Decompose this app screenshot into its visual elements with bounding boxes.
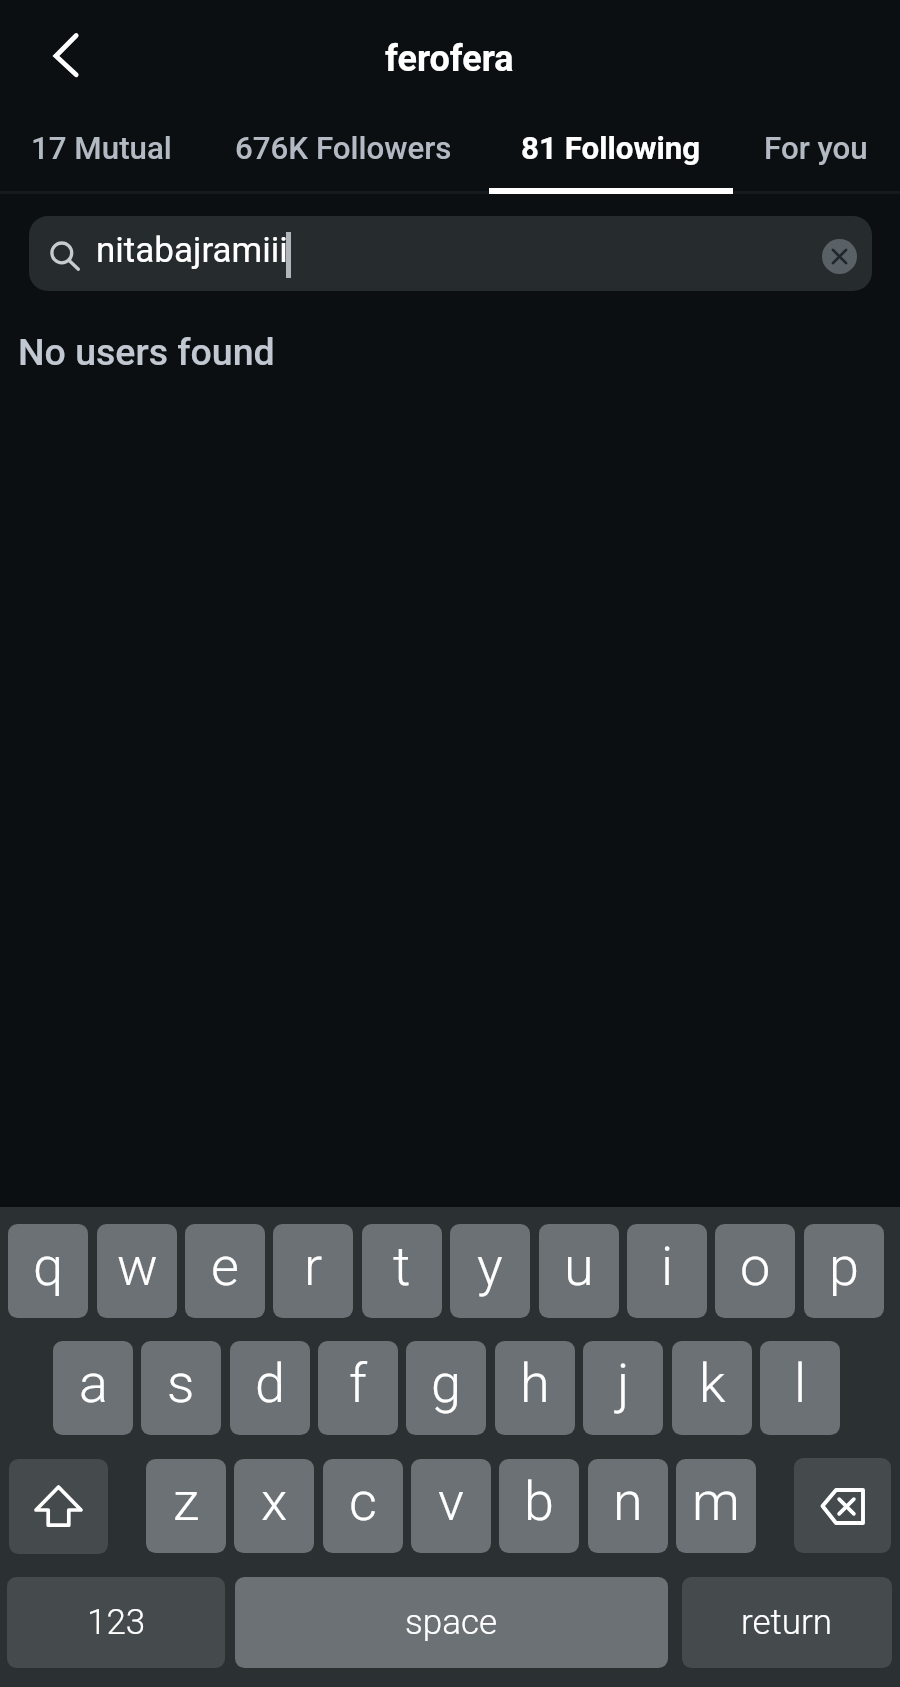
staticText: o (740, 1235, 771, 1298)
button[interactable]: d (230, 1341, 310, 1435)
button[interactable]: Backspace (794, 1458, 891, 1553)
button[interactable]: Back (26, 20, 98, 92)
button[interactable]: Clear text (822, 239, 857, 274)
staticText: z (173, 1470, 200, 1533)
staticText: g (431, 1352, 461, 1415)
staticText: 81 Following (521, 130, 701, 167)
button[interactable]: c (323, 1459, 403, 1553)
button[interactable]: f (318, 1341, 398, 1435)
button[interactable]: w (97, 1224, 177, 1318)
staticText: x (261, 1470, 288, 1533)
staticText: For you (764, 130, 868, 167)
button[interactable]: z (146, 1459, 226, 1553)
staticText: nitabajramiii (96, 230, 288, 271)
button[interactable]: 81 Following (491, 110, 731, 197)
staticText: j (617, 1352, 630, 1415)
staticText: h (520, 1352, 550, 1415)
staticText: l (794, 1352, 807, 1415)
staticText: k (699, 1352, 726, 1415)
button[interactable]: b (499, 1459, 579, 1553)
button[interactable]: l (760, 1341, 840, 1435)
staticText: 676K Followers (235, 130, 452, 167)
staticText: t (393, 1235, 411, 1298)
staticText: f (349, 1352, 367, 1415)
staticText: ferofera (385, 38, 514, 80)
staticText: 123 (87, 1602, 146, 1643)
button[interactable]: 123 (7, 1577, 225, 1668)
staticText: a (79, 1352, 108, 1415)
button[interactable]: p (804, 1224, 884, 1318)
button[interactable]: Search (29, 216, 872, 291)
staticText: return (741, 1602, 833, 1643)
staticText: r (304, 1235, 323, 1298)
staticText: p (829, 1235, 859, 1298)
button[interactable]: g (406, 1341, 486, 1435)
button[interactable]: u (539, 1224, 619, 1318)
button[interactable]: For you (731, 110, 900, 197)
button[interactable]: Shift (9, 1459, 108, 1554)
button[interactable]: i (627, 1224, 707, 1318)
button[interactable]: q (8, 1224, 88, 1318)
button[interactable]: h (495, 1341, 575, 1435)
staticText: space (405, 1602, 498, 1643)
staticText: v (438, 1470, 464, 1533)
button[interactable]: e (185, 1224, 265, 1318)
staticText: y (477, 1235, 503, 1298)
staticText: b (524, 1470, 554, 1533)
staticText: q (33, 1235, 64, 1298)
button[interactable]: v (411, 1459, 491, 1553)
button[interactable]: k (672, 1341, 752, 1435)
staticText: w (117, 1235, 158, 1298)
staticText: c (349, 1470, 377, 1533)
button[interactable]: n (588, 1459, 668, 1553)
button[interactable]: space (235, 1577, 668, 1668)
button[interactable]: r (273, 1224, 353, 1318)
button[interactable]: y (450, 1224, 530, 1318)
staticText: 17 Mutual (31, 130, 172, 167)
button[interactable]: return (682, 1577, 892, 1668)
staticText: i (661, 1235, 674, 1298)
staticText: u (564, 1235, 594, 1298)
button[interactable]: s (141, 1341, 221, 1435)
button[interactable]: o (715, 1224, 795, 1318)
button[interactable]: a (53, 1341, 133, 1435)
button[interactable]: 17 Mutual (6, 110, 196, 197)
staticText: s (167, 1352, 195, 1415)
button[interactable]: t (362, 1224, 442, 1318)
button[interactable]: 676K Followers (208, 110, 478, 197)
button[interactable]: j (583, 1341, 663, 1435)
staticText: n (613, 1470, 643, 1533)
staticText: m (692, 1470, 740, 1533)
button[interactable]: m (676, 1459, 756, 1553)
button[interactable]: x (234, 1459, 314, 1553)
staticText: e (211, 1235, 239, 1298)
staticText: d (255, 1352, 286, 1415)
staticText: No users found (18, 330, 275, 374)
